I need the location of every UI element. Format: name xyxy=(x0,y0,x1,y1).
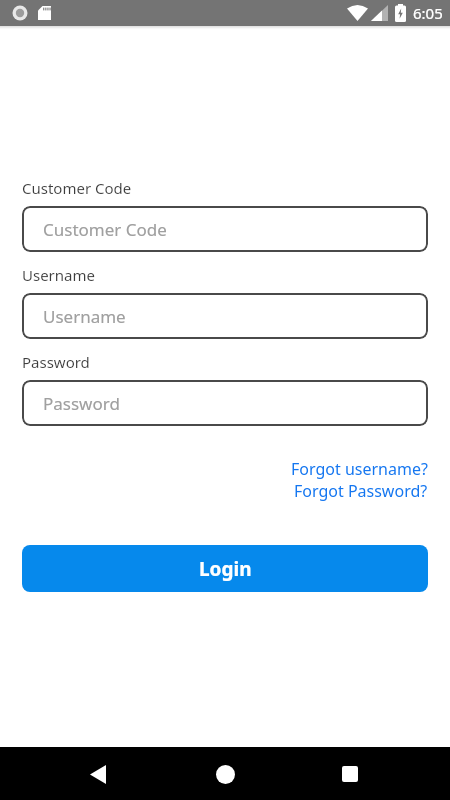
button[interactable]: Forgot username? xyxy=(291,458,428,480)
staticText: 6:05 xyxy=(413,3,443,23)
button[interactable]: Login xyxy=(22,545,428,592)
button[interactable] xyxy=(209,758,241,790)
staticText: Login xyxy=(199,556,252,582)
staticText: Customer Code xyxy=(43,218,167,241)
button[interactable] xyxy=(82,758,114,790)
button[interactable] xyxy=(334,758,366,790)
staticText: Customer Code xyxy=(22,178,132,198)
button[interactable]: Customer Code xyxy=(22,206,428,252)
staticText: Forgot Password? xyxy=(294,480,428,502)
staticText: Password xyxy=(43,392,120,415)
staticText: Username xyxy=(22,265,95,285)
staticText: Username xyxy=(43,305,126,328)
button[interactable]: Username xyxy=(22,293,428,339)
staticText: Password xyxy=(22,352,90,372)
button[interactable]: Forgot Password? xyxy=(294,480,428,502)
button[interactable]: Password xyxy=(22,380,428,426)
staticText: Forgot username? xyxy=(291,458,428,480)
